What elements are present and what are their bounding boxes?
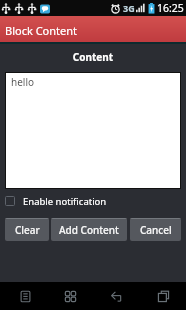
staticText: 3G	[123, 2, 135, 14]
staticText: Add Content	[59, 223, 119, 237]
button[interactable]: Apps	[53, 282, 87, 310]
button[interactable]: Enable notification	[5, 193, 186, 209]
button[interactable]: Menu	[8, 282, 42, 310]
button[interactable]: Add Content	[51, 218, 127, 241]
button[interactable]: Clear	[5, 218, 49, 241]
staticText: hello	[11, 75, 35, 89]
button[interactable]: Cancel	[130, 218, 181, 241]
staticText: Cancel	[140, 223, 172, 237]
staticText: 16:25	[157, 1, 184, 15]
staticText: Content	[0, 50, 186, 64]
button[interactable]: Back	[99, 282, 133, 310]
staticText: Block Content	[5, 23, 78, 38]
staticText: Clear	[15, 223, 40, 237]
button[interactable]: Recents	[146, 282, 180, 310]
staticText: Enable notification	[23, 195, 107, 208]
button[interactable]: hello	[6, 73, 180, 188]
